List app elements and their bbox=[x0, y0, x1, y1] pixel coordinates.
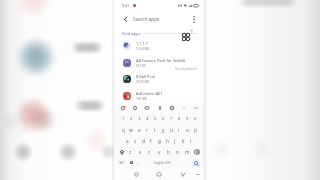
staticText: 4 bbox=[146, 116, 149, 122]
staticText: t bbox=[154, 127, 156, 133]
staticText: 16.54 MB bbox=[136, 47, 150, 51]
button[interactable]: m bbox=[184, 147, 191, 157]
staticText: v bbox=[158, 149, 161, 155]
button[interactable]: Keyboard tool bbox=[132, 105, 138, 111]
button[interactable]: u bbox=[167, 124, 175, 135]
staticText: 537 kB bbox=[136, 64, 146, 68]
staticText: . bbox=[186, 160, 188, 166]
button[interactable]: q bbox=[119, 124, 127, 135]
button[interactable]: y bbox=[159, 124, 167, 135]
staticText: 5 bbox=[154, 116, 157, 122]
button[interactable]: 7 bbox=[167, 113, 175, 124]
staticText: r bbox=[146, 127, 148, 133]
button[interactable]: Keyboard tool bbox=[193, 105, 199, 111]
button[interactable]: 2 bbox=[127, 113, 135, 124]
button[interactable]: Keyboard tool bbox=[157, 105, 163, 111]
button[interactable]: o bbox=[183, 124, 191, 135]
button[interactable]: p bbox=[191, 124, 199, 135]
staticText: 6 bbox=[162, 116, 165, 122]
staticText: 9 bbox=[186, 116, 189, 122]
staticText: i bbox=[178, 127, 180, 133]
button[interactable]: e bbox=[135, 124, 143, 135]
button[interactable]: 1 bbox=[119, 113, 127, 124]
staticText: 9:41 bbox=[122, 3, 130, 8]
button[interactable]: t bbox=[151, 124, 159, 135]
button[interactable]: j bbox=[171, 135, 179, 146]
staticText: u bbox=[170, 127, 173, 133]
staticText: 7 bbox=[170, 116, 173, 122]
button[interactable]: Home bbox=[155, 170, 163, 178]
button[interactable]: Keyboard settings bbox=[129, 160, 134, 165]
button[interactable]: Back bbox=[179, 170, 187, 178]
staticText: m bbox=[185, 149, 190, 155]
staticText: z bbox=[129, 149, 132, 155]
button[interactable]: r bbox=[143, 124, 151, 135]
button[interactable]: x bbox=[137, 147, 144, 157]
button[interactable]: g bbox=[155, 135, 163, 146]
staticText: Recently detected bbox=[175, 67, 197, 71]
staticText: s bbox=[134, 138, 137, 144]
staticText: f bbox=[150, 138, 152, 144]
button[interactable]: z bbox=[127, 147, 134, 157]
button[interactable]: 5 bbox=[151, 113, 159, 124]
button[interactable]: l bbox=[187, 135, 195, 146]
button[interactable]: 3 bbox=[135, 113, 143, 124]
staticText: !#1 bbox=[119, 160, 125, 165]
button[interactable]: a bbox=[123, 135, 131, 146]
button[interactable]: w bbox=[127, 124, 135, 135]
button[interactable]: Shift bbox=[119, 149, 125, 155]
staticText: l bbox=[190, 138, 192, 144]
staticText: o bbox=[186, 127, 189, 133]
button[interactable]: b bbox=[165, 147, 172, 157]
button[interactable]: More options bbox=[189, 14, 199, 24]
staticText: 78.29 MB bbox=[136, 80, 150, 84]
staticText: 1 bbox=[122, 116, 125, 122]
button[interactable]: Backspace bbox=[193, 149, 199, 155]
button[interactable]: AdControl-AE1 bbox=[114, 88, 204, 104]
button[interactable]: f bbox=[147, 135, 155, 146]
staticText: y bbox=[162, 127, 165, 133]
button[interactable]: s bbox=[131, 135, 139, 146]
button[interactable]: v bbox=[156, 147, 163, 157]
staticText: q bbox=[122, 127, 125, 133]
staticText: c bbox=[148, 149, 151, 155]
button[interactable]: k bbox=[179, 135, 187, 146]
staticText: d bbox=[142, 138, 145, 144]
staticText: p bbox=[194, 127, 197, 133]
button[interactable]: Search bbox=[192, 159, 200, 167]
button[interactable]: 9 bbox=[183, 113, 191, 124]
button[interactable]: Keyboard tool bbox=[144, 105, 150, 111]
button[interactable]: 4 bbox=[143, 113, 151, 124]
staticText: Find apps bbox=[122, 31, 141, 36]
staticText: AdControl-AE1 bbox=[136, 91, 163, 96]
staticText: 2 bbox=[130, 116, 133, 122]
staticText: AA Feature Pack for SetEdit bbox=[136, 58, 186, 63]
staticText: , bbox=[137, 160, 139, 166]
button[interactable]: AA Feature Pack for SetEdit bbox=[114, 55, 204, 71]
button[interactable]: Keyboard tool bbox=[169, 105, 175, 111]
staticText: Search apps bbox=[133, 16, 160, 22]
button[interactable]: Recent apps bbox=[132, 170, 140, 178]
staticText: 1.1.1.1 bbox=[136, 41, 149, 46]
button[interactable]: 1.1.1.1 bbox=[114, 38, 204, 54]
button[interactable]: n bbox=[174, 147, 181, 157]
button[interactable]: d bbox=[139, 135, 147, 146]
button[interactable]: Keyboard tool bbox=[181, 105, 187, 111]
staticText: j bbox=[174, 138, 176, 144]
button[interactable]: 8 Ball Pool bbox=[114, 71, 204, 87]
button[interactable]: 0 bbox=[191, 113, 199, 124]
button[interactable]: h bbox=[163, 135, 171, 146]
button[interactable]: c bbox=[146, 147, 153, 157]
button[interactable]: 6 bbox=[159, 113, 167, 124]
staticText: b bbox=[167, 149, 170, 155]
button[interactable]: Switch to grid view bbox=[182, 33, 190, 41]
button[interactable]: !#1 bbox=[119, 160, 125, 165]
staticText: n bbox=[176, 149, 179, 155]
button[interactable]: Keyboard tool bbox=[120, 105, 126, 111]
staticText: w bbox=[129, 127, 133, 133]
staticText: x bbox=[139, 149, 142, 155]
staticText: 130 MB bbox=[136, 97, 147, 101]
button[interactable]: i bbox=[175, 124, 183, 135]
button[interactable]: Back bbox=[120, 14, 130, 24]
button[interactable]: 8 bbox=[175, 113, 183, 124]
